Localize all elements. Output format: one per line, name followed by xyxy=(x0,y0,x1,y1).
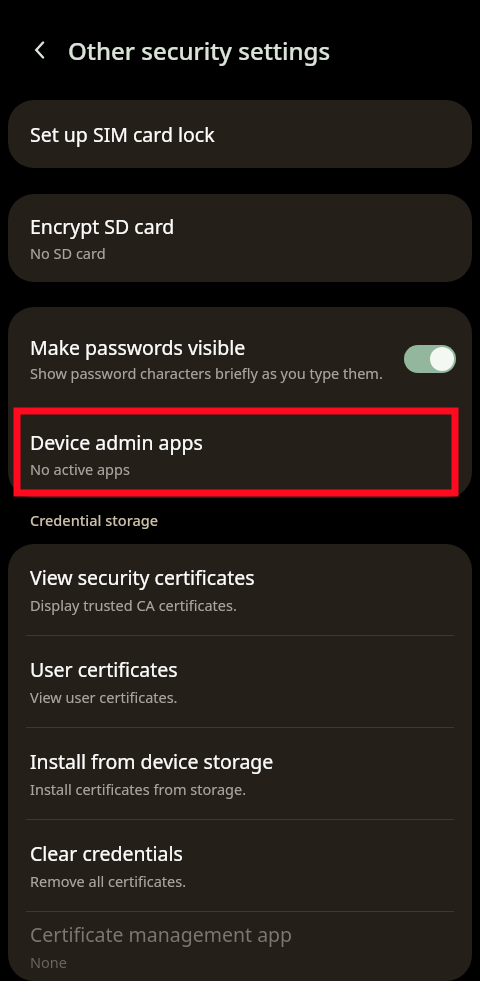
staticText: Make passwords visible xyxy=(30,334,246,361)
button[interactable]: Clear credentials xyxy=(8,820,472,911)
staticText: None xyxy=(30,952,67,972)
staticText: Certificate management app xyxy=(30,921,293,948)
staticText: Device admin apps xyxy=(30,429,203,456)
button[interactable]: Back xyxy=(18,28,62,72)
button[interactable]: Device admin apps xyxy=(8,410,472,498)
staticText: Install certificates from storage. xyxy=(30,779,247,799)
button[interactable]: Make passwords visible xyxy=(8,307,472,410)
staticText: Set up SIM card lock xyxy=(30,121,215,148)
button[interactable]: User certificates xyxy=(8,636,472,727)
button[interactable]: View security certificates xyxy=(8,544,472,635)
staticText: User certificates xyxy=(30,656,178,683)
button[interactable]: Make passwords visible toggle xyxy=(404,345,456,373)
staticText: Show password characters briefly as you … xyxy=(30,363,383,383)
staticText: Clear credentials xyxy=(30,840,183,867)
staticText: View security certificates xyxy=(30,564,255,591)
button[interactable]: Install from device storage xyxy=(8,728,472,819)
staticText: View user certificates. xyxy=(30,687,178,707)
staticText: No active apps xyxy=(30,459,130,479)
staticText: Encrypt SD card xyxy=(30,213,175,240)
staticText: No SD card xyxy=(30,243,106,263)
button[interactable]: Set up SIM card lock xyxy=(8,100,472,168)
staticText: Other security settings xyxy=(68,34,331,67)
staticText: Install from device storage xyxy=(30,748,274,775)
staticText: Display trusted CA certificates. xyxy=(30,595,237,615)
staticText: Remove all certificates. xyxy=(30,871,187,891)
staticText: Credential storage xyxy=(30,510,159,530)
button[interactable]: Certificate management app xyxy=(8,912,472,981)
button[interactable]: Encrypt SD card xyxy=(8,194,472,282)
